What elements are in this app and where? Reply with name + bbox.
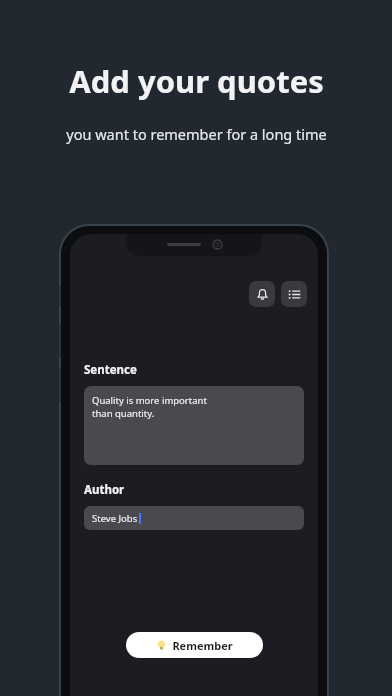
staticText: you want to remember for a long time [66, 124, 327, 144]
staticText: Remember [172, 638, 233, 653]
button[interactable]: Notifications [249, 281, 275, 307]
staticText: Quality is more important than quantity. [92, 394, 207, 420]
button[interactable]: Quality is more important than quantity. [84, 386, 304, 465]
staticText: Author [84, 482, 125, 498]
staticText: Steve Jobs [92, 512, 138, 525]
button[interactable]: Steve Jobs [84, 506, 304, 530]
button[interactable]: Quote list [281, 281, 307, 307]
staticText: Sentence [84, 362, 137, 378]
button[interactable]: Remember [126, 632, 263, 658]
staticText: Add your quotes [69, 60, 324, 102]
